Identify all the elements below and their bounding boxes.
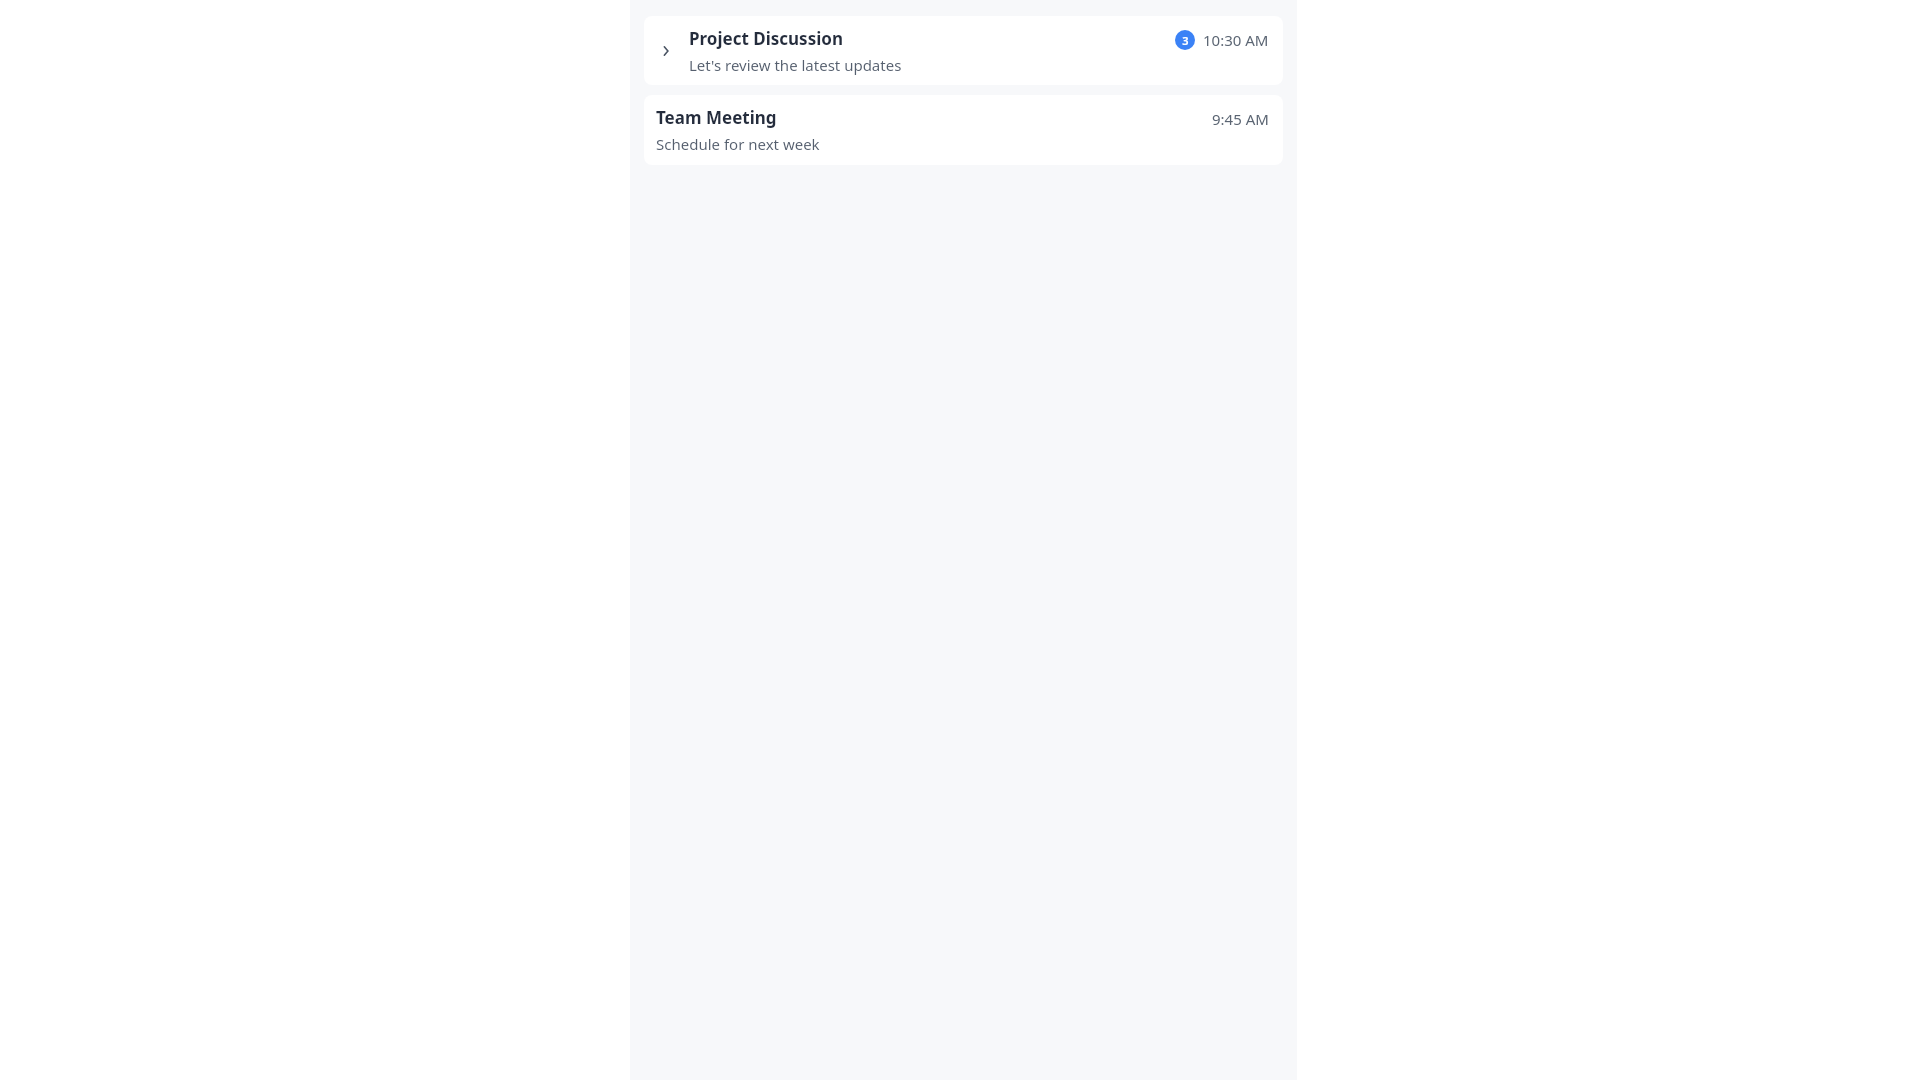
staticText: Project Discussion <box>689 27 843 50</box>
staticText: Team Meeting <box>656 106 777 129</box>
staticText: 3 <box>1182 33 1189 48</box>
staticText: 10:30 AM <box>1203 30 1269 50</box>
staticText: Let's review the latest updates <box>689 55 902 75</box>
staticText: 9:45 AM <box>1212 109 1269 129</box>
staticText: Schedule for next week <box>656 134 820 154</box>
button[interactable]: Expand <box>656 41 676 61</box>
button[interactable]: Expand <box>644 16 1283 85</box>
button[interactable]: Team Meeting <box>644 95 1283 165</box>
